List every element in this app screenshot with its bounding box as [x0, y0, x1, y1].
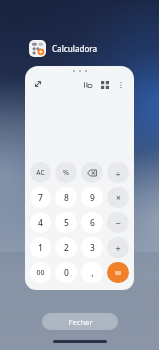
button[interactable]: 6	[81, 212, 103, 233]
staticText: ,	[91, 267, 94, 279]
button[interactable]: 5	[55, 212, 77, 233]
button[interactable]: 4	[30, 212, 51, 233]
staticText: %	[63, 168, 69, 178]
button[interactable]: 8	[55, 187, 77, 208]
staticText: ×	[116, 192, 121, 204]
button[interactable]: Fechar	[42, 313, 118, 330]
button[interactable]: AC	[30, 162, 51, 183]
button[interactable]: 1	[30, 237, 51, 258]
staticText: 0	[64, 267, 69, 279]
button[interactable]: Calculadora	[29, 40, 98, 57]
staticText: 9	[90, 192, 95, 204]
button[interactable]: 0	[55, 262, 77, 283]
staticText: +	[115, 242, 121, 254]
button[interactable]: 3	[81, 237, 103, 258]
staticText: 4	[38, 217, 43, 229]
staticText: 7	[38, 192, 43, 204]
staticText: Calculadora	[52, 43, 98, 54]
button[interactable]: ,	[81, 262, 103, 283]
button[interactable]: 9	[81, 187, 103, 208]
button[interactable]: Minimizar	[81, 78, 94, 91]
button[interactable]: 7	[30, 187, 51, 208]
staticText: 3	[90, 242, 95, 254]
staticText: 6	[90, 217, 95, 229]
staticText: −	[115, 217, 121, 229]
staticText: 5	[64, 217, 69, 229]
staticText: AC	[36, 168, 45, 177]
button[interactable]: ×	[107, 187, 129, 208]
button[interactable]: %	[55, 162, 77, 183]
button[interactable]: ÷	[107, 162, 129, 183]
button[interactable]: Expandir	[32, 78, 44, 90]
button[interactable]: 2	[55, 237, 77, 258]
staticText: Fechar	[68, 317, 93, 327]
button[interactable]: +	[107, 237, 129, 258]
button[interactable]: Igual	[107, 262, 129, 283]
staticText: ÷	[115, 167, 121, 179]
button[interactable]: 00	[30, 262, 51, 283]
staticText: 00	[36, 268, 45, 278]
staticText: 2	[64, 242, 69, 254]
button[interactable]: Janelas	[98, 78, 111, 91]
staticText: 1	[38, 242, 43, 254]
button[interactable]: −	[107, 212, 129, 233]
button[interactable]: Mais opções	[114, 78, 127, 91]
button[interactable]: Apagar	[81, 162, 103, 183]
staticText: 8	[64, 192, 69, 204]
